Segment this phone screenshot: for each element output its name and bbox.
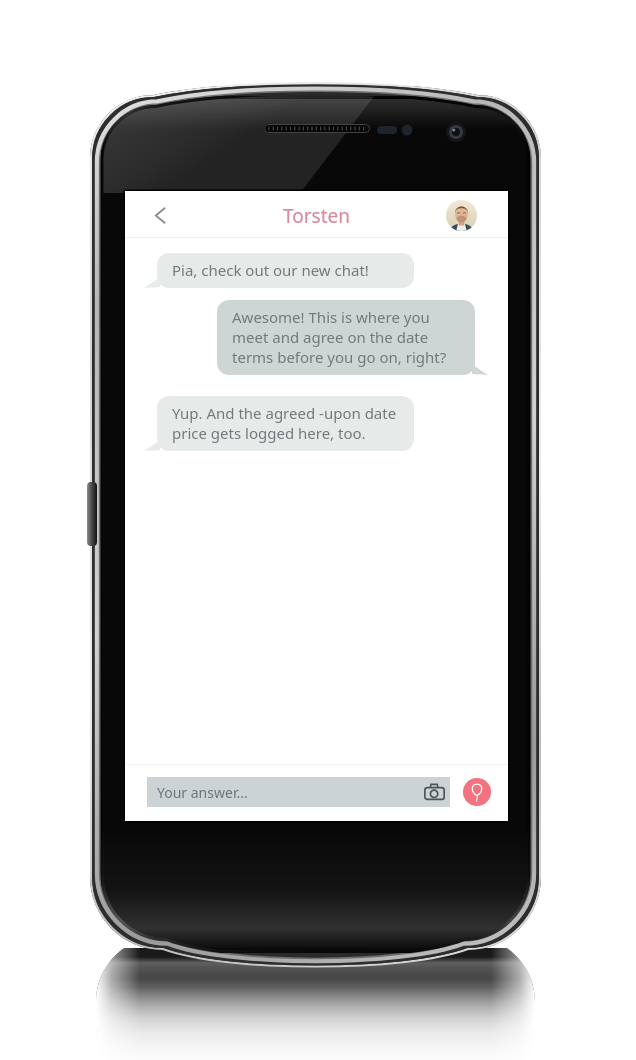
button[interactable]: Your answer... [147, 777, 450, 807]
staticText: Your answer... [157, 783, 421, 802]
button[interactable]: Yup. And the agreed -upon date price get… [157, 396, 414, 451]
button[interactable]: Camera [421, 779, 447, 805]
button[interactable]: Back [145, 200, 175, 230]
staticText: Torsten [283, 203, 350, 229]
staticText: Pia, check out our new chat! [172, 260, 369, 280]
button[interactable]: Send [463, 778, 491, 806]
button[interactable]: Pia, check out our new chat! [157, 253, 414, 288]
staticText: Yup. And the agreed -upon date price get… [172, 403, 397, 443]
button[interactable]: Awesome! This is where you meet and agre… [217, 300, 475, 375]
button[interactable]: Profile photo [446, 200, 477, 231]
staticText: Awesome! This is where you meet and agre… [232, 307, 447, 367]
